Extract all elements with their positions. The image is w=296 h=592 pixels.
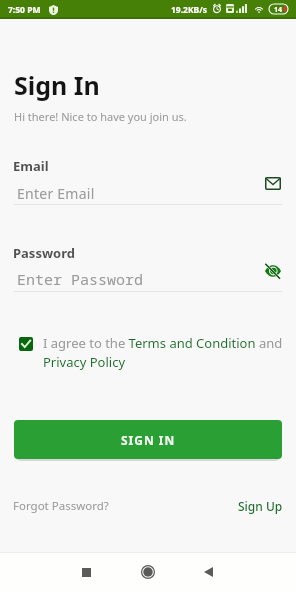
- staticText: 7:50 PM: [8, 4, 41, 16]
- button[interactable]: I agree: [19, 337, 33, 351]
- button[interactable]: I agree to the Terms and Condition and P…: [43, 334, 287, 371]
- staticText: 14: [271, 5, 285, 15]
- staticText: Email: [13, 157, 49, 175]
- staticText: Enter Email: [17, 184, 95, 203]
- button[interactable]: Forgot Password?: [13, 498, 109, 514]
- staticText: Hi there! Nice to have you join us.: [14, 109, 187, 124]
- button[interactable]: Back: [190, 554, 226, 590]
- staticText: Sign Up: [238, 498, 283, 514]
- button[interactable]: SIGN IN: [14, 420, 282, 459]
- button[interactable]: Show password: [260, 258, 286, 284]
- staticText: Password: [13, 244, 75, 262]
- button[interactable]: Home: [130, 554, 166, 590]
- staticText: 19.2KB/s: [171, 4, 208, 16]
- button[interactable]: Recent apps: [68, 554, 104, 590]
- staticText: SIGN IN: [121, 432, 176, 448]
- staticText: Enter Password: [17, 269, 144, 289]
- button[interactable]: Email: [260, 172, 286, 195]
- staticText: I agree to the Terms and Condition and P…: [43, 334, 287, 371]
- staticText: Forgot Password?: [13, 498, 109, 514]
- staticText: Sign In: [14, 68, 100, 102]
- button[interactable]: Sign Up: [222, 498, 283, 514]
